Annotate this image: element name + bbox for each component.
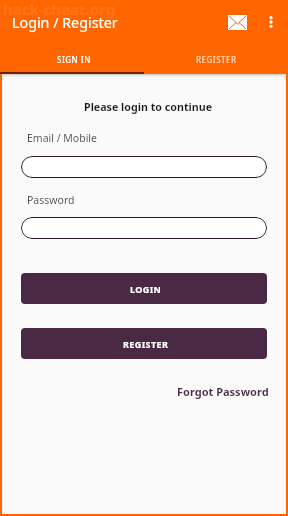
button[interactable]: More options [260, 11, 282, 33]
staticText: Password [27, 193, 75, 207]
staticText: Login / Register [12, 13, 118, 32]
staticText: Email / Mobile [27, 131, 98, 145]
button[interactable]: LOGIN [21, 273, 267, 304]
staticText: hack-cheat.org [3, 0, 116, 19]
staticText: LOGIN [130, 283, 162, 295]
staticText: Please login to continue [6, 100, 288, 115]
button[interactable]: Password [21, 217, 267, 239]
staticText: REGISTER [196, 54, 237, 65]
button[interactable]: SIGN IN [0, 44, 144, 74]
button[interactable]: Email or mobile number [21, 156, 267, 178]
button[interactable]: Forgot Password [177, 384, 269, 399]
staticText: REGISTER [123, 338, 169, 350]
button[interactable]: REGISTER [144, 44, 288, 74]
button[interactable]: Messages [222, 7, 252, 37]
staticText: SIGN IN [57, 54, 91, 65]
button[interactable]: REGISTER [21, 328, 267, 359]
